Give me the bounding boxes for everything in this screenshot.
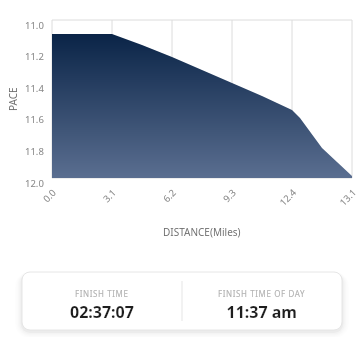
button[interactable] bbox=[0, 0, 364, 337]
button[interactable]: Pace over distance chart bbox=[0, 0, 364, 337]
